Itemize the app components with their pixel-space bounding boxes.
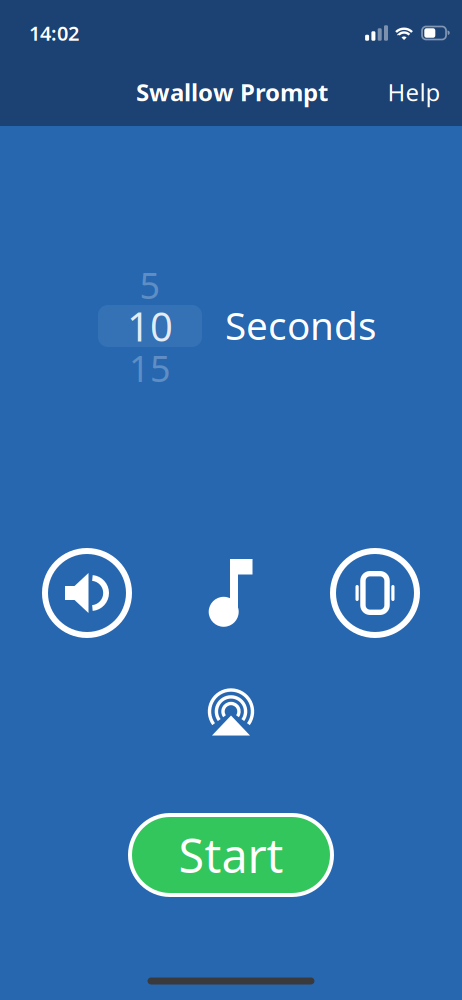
staticText: 5 [139, 261, 160, 309]
staticText: Swallow Prompt [136, 76, 328, 108]
staticText: 15 [129, 344, 171, 392]
staticText: Help [387, 76, 440, 108]
staticText: Start [178, 824, 283, 886]
button[interactable]: Vibration [329, 547, 421, 639]
button[interactable]: Duration 10 seconds [98, 305, 202, 347]
button[interactable]: Help [381, 70, 447, 114]
staticText: 14:02 [29, 20, 79, 46]
button[interactable]: Tone [208, 559, 253, 627]
button[interactable]: AirPlay [206, 688, 256, 738]
button[interactable]: Start [128, 813, 334, 897]
staticText: Seconds [225, 299, 377, 351]
staticText: 10 [127, 299, 173, 352]
button[interactable]: Sound [41, 547, 133, 639]
